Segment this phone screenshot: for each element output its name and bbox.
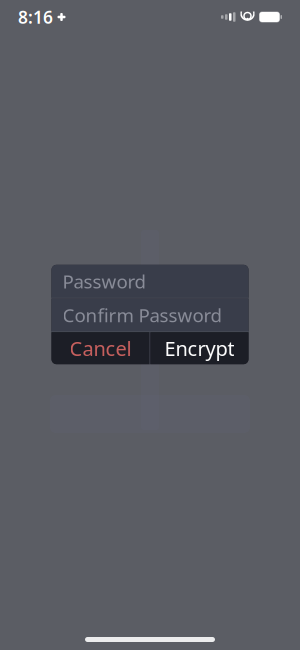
staticText: Password bbox=[62, 269, 145, 294]
staticText: 8:16 bbox=[18, 5, 53, 28]
button[interactable]: Cancel bbox=[51, 332, 150, 364]
button[interactable]: Encrypt bbox=[150, 332, 249, 364]
staticText: Cancel bbox=[70, 335, 132, 361]
staticText: Confirm Password bbox=[62, 303, 221, 327]
staticText: Encrypt bbox=[164, 335, 234, 361]
